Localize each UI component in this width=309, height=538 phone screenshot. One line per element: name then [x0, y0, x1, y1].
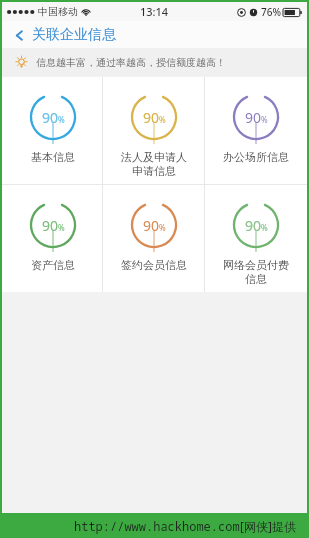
button[interactable]: 90% — [205, 77, 307, 184]
staticText: 13:14 — [140, 4, 169, 19]
staticText: 网络会员付费 — [223, 258, 289, 272]
staticText: 90% — [143, 108, 166, 127]
staticText: 76% — [261, 5, 281, 19]
staticText: 法人及申请人 — [121, 150, 187, 164]
button[interactable]: Back — [10, 26, 28, 44]
staticText: 办公场所信息 — [223, 150, 289, 164]
staticText: 90% — [143, 216, 166, 235]
button[interactable]: 90% — [2, 77, 103, 184]
staticText: 关联企业信息 — [32, 26, 116, 44]
staticText: 90% — [42, 216, 65, 235]
staticText: 90% — [245, 216, 268, 235]
button[interactable]: 90% — [103, 77, 205, 184]
staticText: 资产信息 — [31, 258, 75, 272]
staticText: http://www.hackhome.com — [74, 518, 240, 534]
staticText: 签约会员信息 — [121, 258, 187, 272]
button[interactable]: Back — [2, 21, 307, 48]
staticText: 90% — [245, 108, 268, 127]
staticText: [网侠]提供 — [240, 518, 296, 534]
staticText: 信息 — [245, 272, 267, 286]
staticText: 基本信息 — [31, 150, 75, 164]
button[interactable]: 90% — [103, 185, 205, 292]
button[interactable]: 90% — [2, 185, 103, 292]
staticText: 中国移动 — [38, 5, 78, 18]
staticText: 信息越丰富，通过率越高，授信额度越高！ — [36, 56, 226, 69]
staticText: 申请信息 — [132, 164, 176, 178]
button[interactable]: 90% — [205, 185, 307, 292]
staticText: 90% — [42, 108, 65, 127]
